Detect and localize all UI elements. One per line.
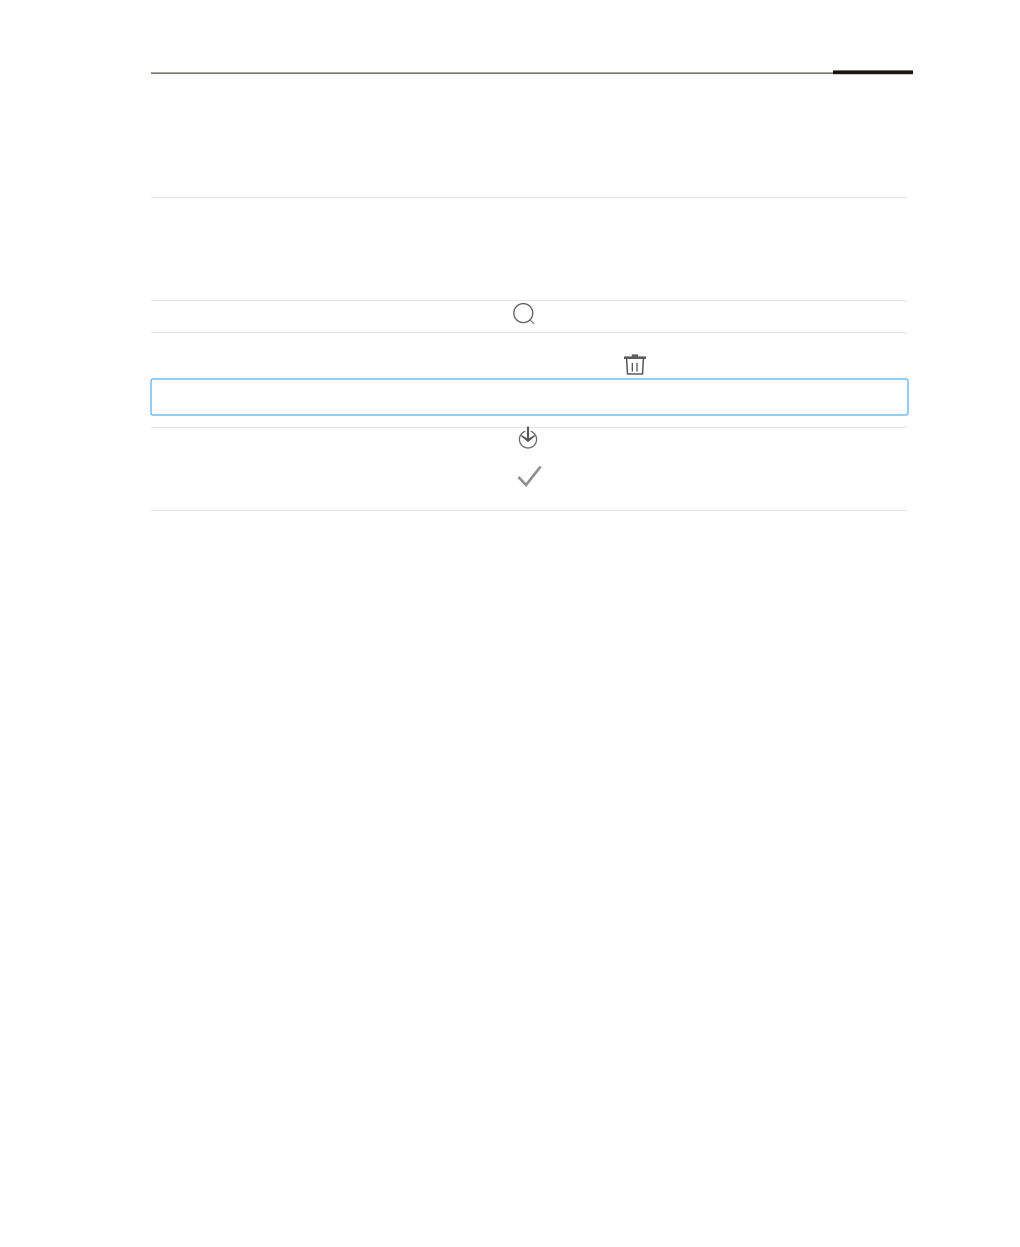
- button[interactable]: Text field: [151, 379, 908, 415]
- button[interactable]: Search: [514, 304, 535, 325]
- button[interactable]: Delete: [624, 353, 646, 376]
- button[interactable]: Download: [517, 426, 539, 449]
